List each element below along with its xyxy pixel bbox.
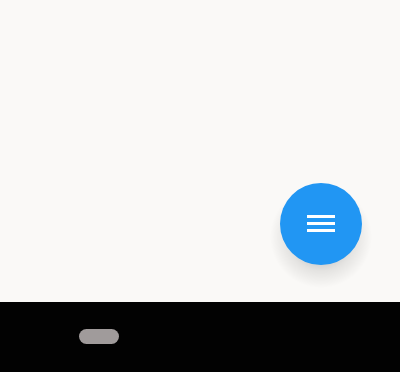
button[interactable] bbox=[280, 183, 362, 265]
button[interactable] bbox=[79, 329, 119, 344]
